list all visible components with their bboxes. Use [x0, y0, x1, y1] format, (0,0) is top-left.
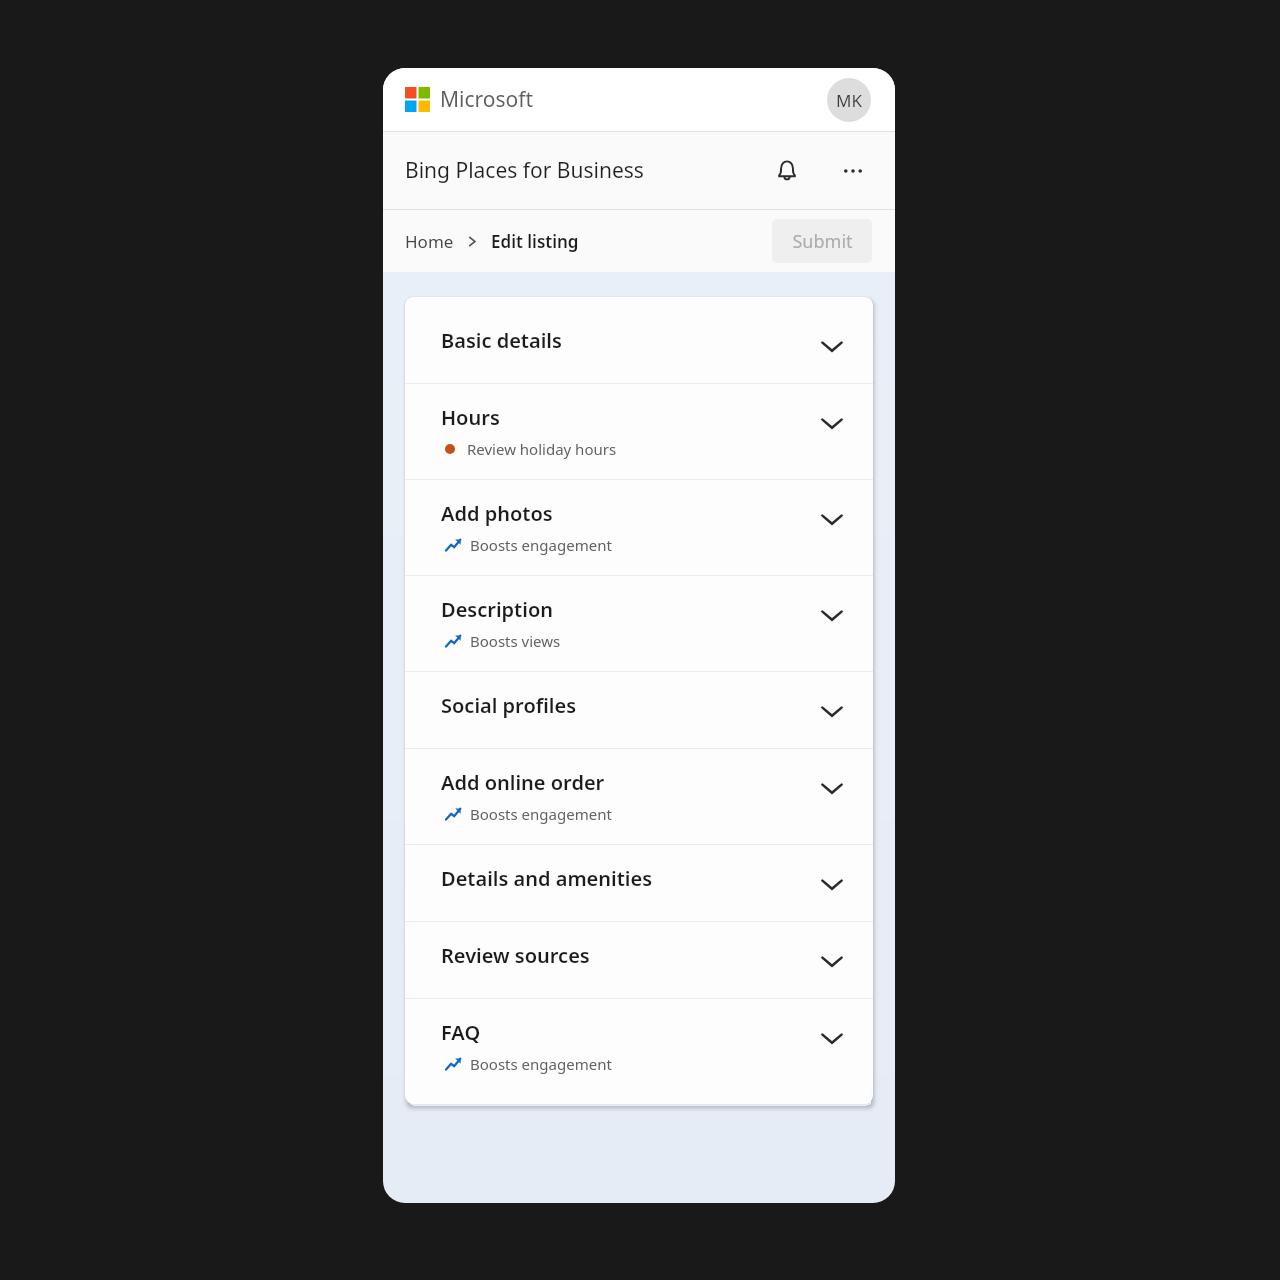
button[interactable]: Add online order [405, 749, 873, 844]
button[interactable]: More options [833, 151, 873, 191]
staticText: Hours [441, 404, 500, 431]
staticText: Boosts engagement [470, 804, 612, 824]
staticText: MK [836, 89, 862, 112]
button[interactable]: Notifications [765, 149, 809, 193]
staticText: Boosts engagement [470, 535, 612, 555]
staticText: Boosts views [470, 631, 561, 651]
button[interactable]: Description [405, 576, 873, 671]
staticText: Social profiles [441, 692, 577, 719]
staticText: Review sources [441, 942, 590, 969]
staticText: Microsoft [440, 85, 534, 114]
button[interactable]: Add photos [405, 480, 873, 575]
staticText: Basic details [441, 327, 562, 354]
staticText: Submit [792, 229, 853, 254]
button[interactable]: Hours [405, 384, 873, 479]
staticText: Add photos [441, 500, 553, 527]
staticText: Review holiday hours [467, 439, 617, 459]
staticText: Boosts engagement [470, 1054, 612, 1074]
button[interactable]: Review sources [405, 922, 873, 998]
staticText: FAQ [441, 1019, 481, 1046]
button[interactable]: Account MK [827, 78, 871, 122]
button[interactable]: Social profiles [405, 672, 873, 748]
button[interactable]: Home [405, 230, 454, 253]
staticText: Add online order [441, 769, 605, 796]
button[interactable]: FAQ [405, 999, 873, 1104]
button[interactable]: Edit listing [491, 230, 579, 253]
button[interactable]: Submit [772, 219, 872, 263]
button[interactable]: Basic details [405, 297, 873, 383]
staticText: Details and amenities [441, 865, 653, 892]
staticText: Description [441, 596, 553, 623]
staticText: Bing Places for Business [405, 156, 644, 185]
button[interactable]: Microsoft [405, 85, 534, 114]
button[interactable]: Details and amenities [405, 845, 873, 921]
